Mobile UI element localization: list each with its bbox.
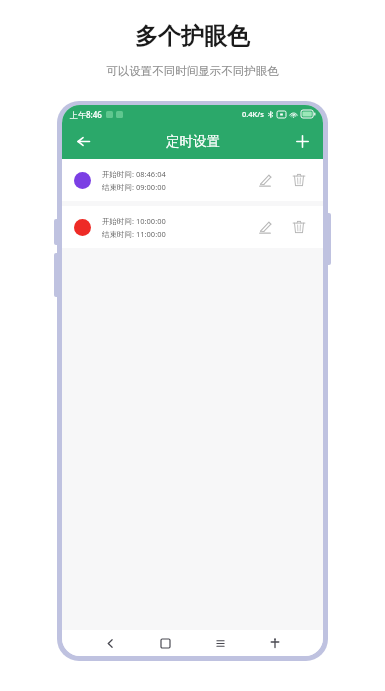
- button[interactable]: Edit: [251, 213, 279, 241]
- staticText: 结束时间: 11:00:00: [102, 229, 166, 239]
- button[interactable]: Delete: [285, 213, 313, 241]
- button[interactable]: 开始时间: 10:00:00: [62, 206, 323, 248]
- button[interactable]: 开始时间: 08:46:04: [62, 159, 323, 201]
- button[interactable]: Accessibility: [264, 632, 286, 654]
- staticText: 多个护眼色: [135, 22, 250, 51]
- button[interactable]: Home: [154, 632, 176, 654]
- staticText: 开始时间: 10:00:00: [102, 216, 166, 226]
- staticText: 上午8:46: [70, 109, 102, 120]
- button[interactable]: Recents: [209, 632, 231, 654]
- button[interactable]: Delete: [285, 166, 313, 194]
- staticText: 开始时间: 08:46:04: [102, 169, 166, 179]
- staticText: 0.4K/s: [242, 109, 264, 119]
- staticText: 结束时间: 09:00:00: [102, 182, 166, 192]
- button[interactable]: Edit: [251, 166, 279, 194]
- staticText: 可以设置不同时间显示不同护眼色: [106, 64, 279, 78]
- button[interactable]: Add: [287, 126, 317, 156]
- button[interactable]: Back: [99, 632, 121, 654]
- staticText: 定时设置: [166, 133, 220, 150]
- button[interactable]: Back: [68, 126, 98, 156]
